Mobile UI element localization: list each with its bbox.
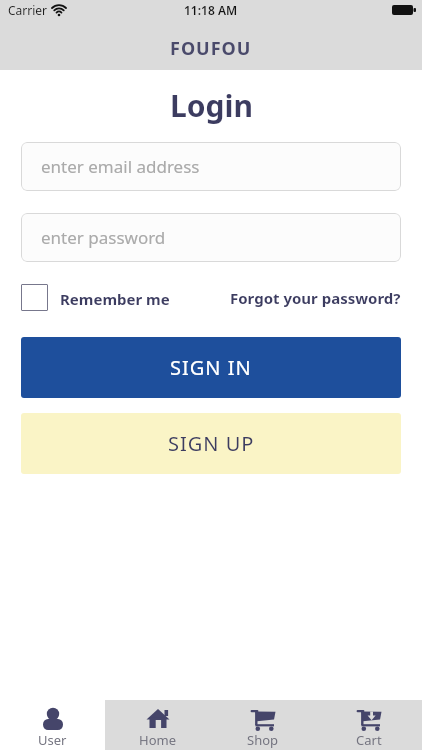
staticText: SIGN UP (168, 430, 255, 457)
button[interactable]: enter password (21, 213, 401, 262)
staticText: Forgot your password? (230, 288, 401, 308)
staticText: User (38, 731, 67, 749)
staticText: 11:18 AM (184, 2, 238, 18)
staticText: enter email address (41, 155, 200, 178)
button[interactable]: SIGN UP (21, 413, 401, 474)
button[interactable]: Home (105, 700, 210, 750)
staticText: FOUFOU (170, 36, 252, 61)
staticText: Cart (356, 731, 382, 749)
staticText: Carrier (8, 2, 48, 18)
staticText: Home (139, 731, 176, 749)
button[interactable]: SIGN IN (21, 337, 401, 398)
staticText: SIGN IN (170, 354, 252, 381)
button[interactable]: User (0, 700, 105, 750)
staticText: Remember me (60, 289, 170, 309)
button[interactable] (21, 284, 48, 311)
staticText: enter password (41, 226, 166, 249)
button[interactable]: Forgot your password? (230, 284, 405, 311)
staticText: Login (170, 85, 253, 126)
button[interactable]: Shop (210, 700, 316, 750)
button[interactable]: enter email address (21, 142, 401, 191)
staticText: Shop (247, 731, 279, 749)
button[interactable]: Cart (316, 700, 422, 750)
